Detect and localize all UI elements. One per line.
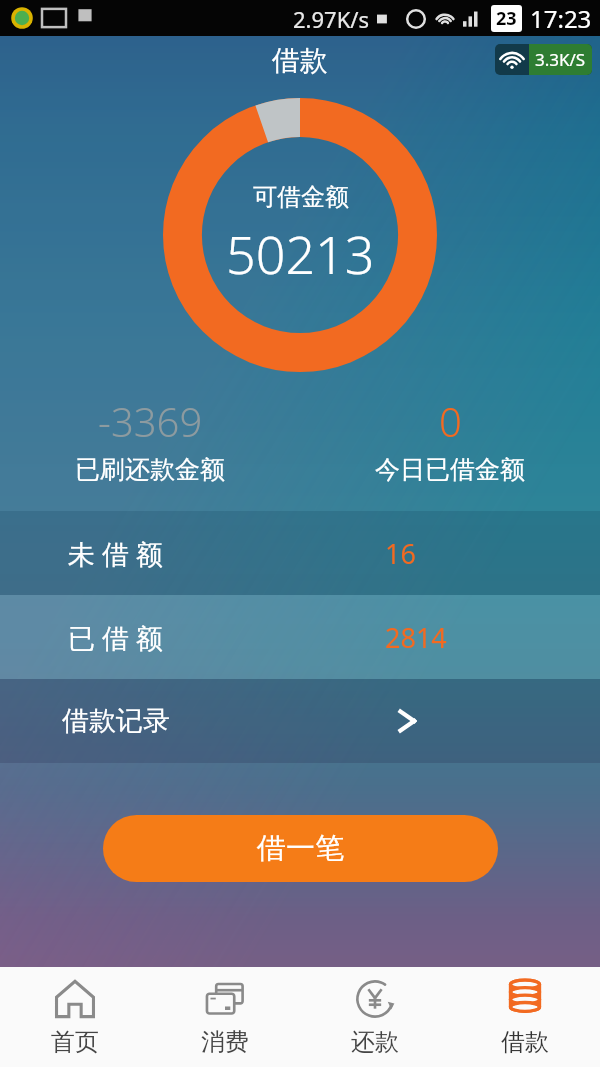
button[interactable]: 已 借 额 (0, 595, 600, 679)
staticText: 未 借 额 (68, 535, 164, 572)
other: Network speed (495, 44, 592, 75)
button[interactable]: 消费 (150, 967, 300, 1067)
staticText: 今日已借金额 (375, 454, 525, 485)
staticText: 16 (385, 535, 416, 572)
staticText: 3.3K/S (535, 48, 586, 71)
staticText: 0 (439, 394, 462, 448)
button[interactable]: 首页 (0, 967, 150, 1067)
staticText: 17:23 (530, 2, 592, 35)
staticText: 还款 (351, 1027, 399, 1057)
staticText: 借款记录 (62, 704, 170, 738)
staticText: 50213 (226, 218, 375, 289)
button[interactable]: 还款 (300, 967, 450, 1067)
button[interactable]: 未 借 额 (0, 511, 600, 595)
staticText: 借款 (272, 43, 328, 78)
button[interactable]: 借款记录 (0, 679, 600, 763)
staticText: 借一笔 (257, 830, 344, 867)
button[interactable]: 借一笔 (103, 815, 498, 882)
staticText: 2.97K/s (293, 4, 369, 34)
staticText: 已 借 额 (68, 619, 164, 656)
staticText: -3369 (98, 394, 203, 448)
staticText: 23 (496, 6, 517, 31)
button[interactable]: 0 (300, 394, 600, 485)
staticText: 消费 (201, 1027, 249, 1057)
staticText: 已刷还款金额 (75, 454, 225, 485)
staticText: 首页 (51, 1027, 99, 1057)
button[interactable]: 借款 (450, 967, 600, 1067)
staticText: 借款 (501, 1027, 549, 1057)
staticText: 可借金额 (253, 182, 349, 212)
staticText: 2814 (385, 619, 447, 656)
button[interactable]: -3369 (0, 394, 300, 485)
